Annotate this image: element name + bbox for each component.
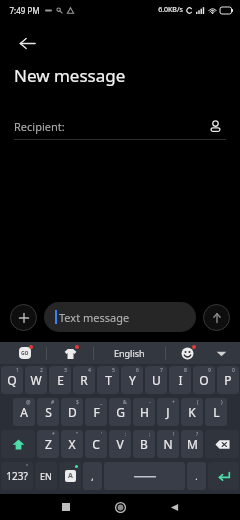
button[interactable]: Home <box>105 494 135 520</box>
other: Backspace <box>215 439 230 450</box>
staticText: D <box>68 404 77 420</box>
staticText: GO <box>21 350 29 357</box>
staticText: @ <box>26 399 31 406</box>
button[interactable]: V <box>109 430 131 458</box>
staticText: & <box>123 399 127 406</box>
staticText: T <box>105 372 112 388</box>
button[interactable]: Y <box>121 366 143 394</box>
staticText: S <box>45 404 52 420</box>
button[interactable]: Z <box>37 430 59 458</box>
staticText: J <box>166 404 170 420</box>
staticText: 6 <box>136 367 139 374</box>
staticText: Q <box>7 372 17 388</box>
staticText: K <box>188 404 196 420</box>
staticText: New message <box>14 64 126 87</box>
staticText: O <box>199 372 209 388</box>
staticText: " <box>76 431 79 438</box>
staticText: H <box>140 404 149 420</box>
button[interactable]: K <box>181 398 203 426</box>
button[interactable] <box>104 462 185 490</box>
button[interactable]: More options <box>210 342 232 364</box>
button[interactable]: Back <box>12 28 42 58</box>
button[interactable]: P <box>217 366 239 394</box>
staticText: W <box>30 372 42 388</box>
staticText: ; <box>149 431 151 438</box>
button[interactable]: GO keyboard <box>14 342 36 364</box>
staticText: L <box>213 404 220 420</box>
button[interactable]: M <box>181 430 203 458</box>
staticText: 1 <box>16 367 19 374</box>
staticText: ' <box>101 431 103 438</box>
staticText: E <box>57 372 64 388</box>
staticText: U <box>152 372 161 388</box>
button[interactable]: J <box>157 398 179 426</box>
button[interactable]: L <box>205 398 227 426</box>
button[interactable]: R <box>73 366 95 394</box>
staticText: - <box>149 399 151 406</box>
button[interactable]: Contacts <box>204 115 226 137</box>
button[interactable]: W <box>25 366 47 394</box>
staticText: ( <box>197 399 199 406</box>
staticText: A <box>20 404 28 420</box>
button[interactable]: X <box>61 430 83 458</box>
staticText: ! <box>173 431 175 438</box>
button[interactable]: Recents <box>51 494 81 520</box>
button[interactable]: Emoji <box>176 342 198 364</box>
staticText: C <box>92 436 100 452</box>
staticText: B <box>140 436 148 452</box>
staticText: : <box>125 431 127 438</box>
button[interactable]: Recipient: <box>14 113 226 139</box>
button[interactable]: O <box>193 366 215 394</box>
button[interactable]: Q <box>1 366 23 394</box>
button[interactable]: Theme <box>59 342 81 364</box>
staticText: I <box>178 372 183 388</box>
staticText: P <box>224 372 232 388</box>
staticText: X <box>68 436 76 452</box>
staticText: 8 <box>184 367 187 374</box>
staticText: * <box>52 431 55 438</box>
button[interactable]: A <box>59 462 81 490</box>
button[interactable]: U <box>145 366 167 394</box>
button[interactable]: N <box>157 430 179 458</box>
staticText: , <box>91 470 94 482</box>
staticText: 6.0KB/s <box>158 5 183 15</box>
staticText: Text message <box>59 310 130 325</box>
staticText: 9 <box>208 367 211 374</box>
button[interactable]: F <box>85 398 107 426</box>
staticText: M <box>187 436 198 452</box>
staticText: 3 <box>64 367 67 374</box>
other: Enter <box>217 469 231 483</box>
staticText: R <box>80 372 88 388</box>
staticText: + <box>172 399 175 406</box>
staticText: 0 <box>232 367 235 374</box>
button[interactable]: EN <box>35 462 57 490</box>
button[interactable]: . <box>187 462 206 490</box>
button[interactable]: Backspace <box>205 430 239 458</box>
staticText: English <box>114 347 145 359</box>
button[interactable]: B <box>133 430 155 458</box>
button[interactable]: H <box>133 398 155 426</box>
button[interactable]: Text message <box>44 302 196 332</box>
button[interactable]: G <box>109 398 131 426</box>
button[interactable]: 123? <box>1 462 33 490</box>
staticText: _ <box>100 399 103 406</box>
button[interactable]: A <box>13 398 35 426</box>
button[interactable]: Enter <box>208 462 239 490</box>
button[interactable]: English <box>114 347 145 359</box>
button[interactable]: E <box>49 366 71 394</box>
button[interactable]: D <box>61 398 83 426</box>
button[interactable]: Send <box>203 304 230 331</box>
button[interactable] <box>1 430 35 458</box>
button[interactable]: Add attachment <box>10 304 37 331</box>
button[interactable]: , <box>83 462 102 490</box>
button[interactable]: I <box>169 366 191 394</box>
button[interactable]: C <box>85 430 107 458</box>
staticText: 4 <box>88 367 91 374</box>
button[interactable]: Back <box>159 494 189 520</box>
staticText: N <box>163 436 173 452</box>
button[interactable]: T <box>97 366 119 394</box>
staticText: $ <box>76 399 79 406</box>
staticText: EN <box>40 470 52 482</box>
staticText: F <box>93 404 100 420</box>
button[interactable]: S <box>37 398 59 426</box>
